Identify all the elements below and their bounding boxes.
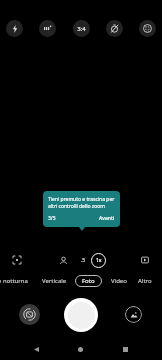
button[interactable]: Scan xyxy=(9,252,25,268)
button[interactable]: Altro xyxy=(136,275,154,287)
staticText: Video xyxy=(111,277,127,285)
button[interactable]: Gallery xyxy=(125,306,142,323)
button[interactable]: 1x xyxy=(91,253,106,268)
button[interactable]: Timer off xyxy=(106,20,123,37)
staticText: 3/5 xyxy=(48,215,56,222)
button[interactable]: Flash xyxy=(6,20,23,37)
staticText: e notturna xyxy=(0,277,28,285)
button[interactable]: Switch camera xyxy=(19,304,40,325)
button[interactable]: Aspect ratio 3 by 4 xyxy=(73,20,90,37)
button[interactable]: Beauty xyxy=(55,252,71,268)
button[interactable]: Recents xyxy=(117,341,133,357)
button[interactable]: Shutter xyxy=(64,298,98,332)
button[interactable]: Filters xyxy=(139,20,156,37)
staticText: Foto xyxy=(82,277,95,285)
button[interactable]: .5 xyxy=(77,254,89,266)
staticText: .5 xyxy=(81,257,86,264)
button[interactable]: Foto xyxy=(75,275,102,287)
button[interactable]: e notturna xyxy=(0,275,30,287)
staticText: Altro xyxy=(138,277,152,285)
staticText: 1x xyxy=(96,257,102,264)
staticText: Verticale xyxy=(42,277,67,285)
staticText: 3:4 xyxy=(77,25,86,33)
button[interactable]: HDR xyxy=(39,20,56,37)
button[interactable]: Home xyxy=(72,341,88,357)
button[interactable]: Tieni premuto e trascina per altri contr… xyxy=(43,191,120,227)
button[interactable]: Quick capture xyxy=(137,252,153,268)
button[interactable]: Video xyxy=(109,275,129,287)
button[interactable]: Verticale xyxy=(40,275,69,287)
button[interactable]: Back xyxy=(28,341,44,357)
staticText: Avanti xyxy=(99,215,115,222)
staticText: Tieni premuto e trascina per altri contr… xyxy=(48,196,115,210)
